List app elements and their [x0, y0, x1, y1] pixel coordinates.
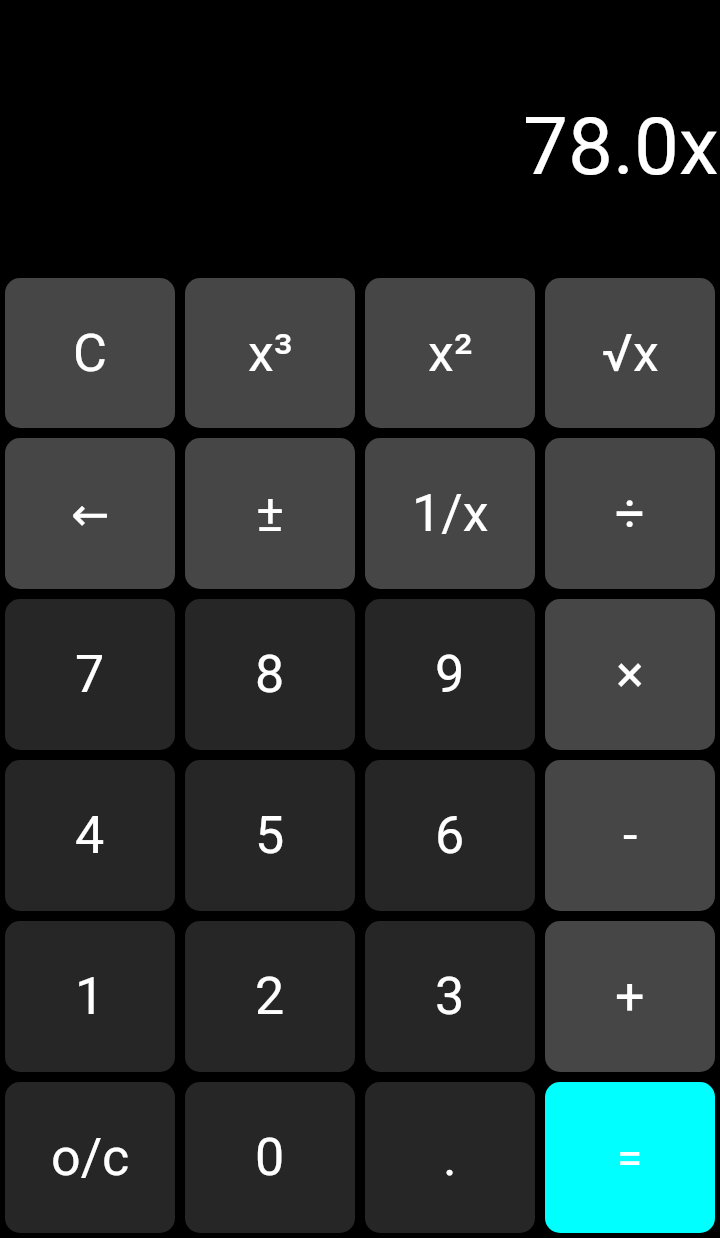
- staticText: x³: [248, 323, 293, 384]
- button[interactable]: 1: [5, 921, 175, 1072]
- staticText: 3: [435, 966, 465, 1027]
- staticText: 8: [255, 644, 285, 705]
- staticText: o/c: [51, 1127, 130, 1188]
- staticText: 1: [75, 966, 105, 1027]
- button[interactable]: 3: [365, 921, 535, 1072]
- staticText: 9: [435, 644, 465, 705]
- staticText: x²: [428, 323, 473, 384]
- staticText: √x: [602, 323, 659, 384]
- button[interactable]: 8: [185, 599, 355, 750]
- staticText: 6: [435, 805, 465, 866]
- staticText: 1/x: [412, 483, 489, 544]
- staticText: 78.0x: [523, 100, 719, 194]
- staticText: 2: [255, 966, 285, 1027]
- button[interactable]: x²: [365, 278, 535, 428]
- button[interactable]: 1/x: [365, 438, 535, 589]
- button[interactable]: x³: [185, 278, 355, 428]
- button[interactable]: .: [365, 1082, 535, 1233]
- button[interactable]: 2: [185, 921, 355, 1072]
- button[interactable]: ±: [185, 438, 355, 589]
- button[interactable]: 9: [365, 599, 535, 750]
- button[interactable]: 4: [5, 760, 175, 911]
- button[interactable]: 0: [185, 1082, 355, 1233]
- staticText: 5: [255, 805, 285, 866]
- staticText: 7: [75, 644, 105, 705]
- button[interactable]: 7: [5, 599, 175, 750]
- staticText: ←: [71, 487, 110, 541]
- staticText: 4: [75, 805, 105, 866]
- button[interactable]: ÷: [545, 438, 715, 589]
- button[interactable]: ←: [5, 438, 175, 589]
- staticText: 0: [255, 1127, 285, 1188]
- button[interactable]: 6: [365, 760, 535, 911]
- button[interactable]: =: [545, 1082, 715, 1233]
- button[interactable]: ×: [545, 599, 715, 750]
- button[interactable]: C: [5, 278, 175, 428]
- button[interactable]: 5: [185, 760, 355, 911]
- staticText: ×: [616, 644, 644, 705]
- staticText: =: [617, 1131, 643, 1185]
- button[interactable]: +: [545, 921, 715, 1072]
- staticText: ÷: [615, 483, 645, 544]
- staticText: C: [73, 323, 107, 384]
- staticText: .: [443, 1127, 457, 1188]
- staticText: ±: [256, 483, 284, 544]
- button[interactable]: o/c: [5, 1082, 175, 1233]
- staticText: +: [615, 966, 645, 1027]
- staticText: -: [623, 805, 638, 866]
- button[interactable]: -: [545, 760, 715, 911]
- button[interactable]: √x: [545, 278, 715, 428]
